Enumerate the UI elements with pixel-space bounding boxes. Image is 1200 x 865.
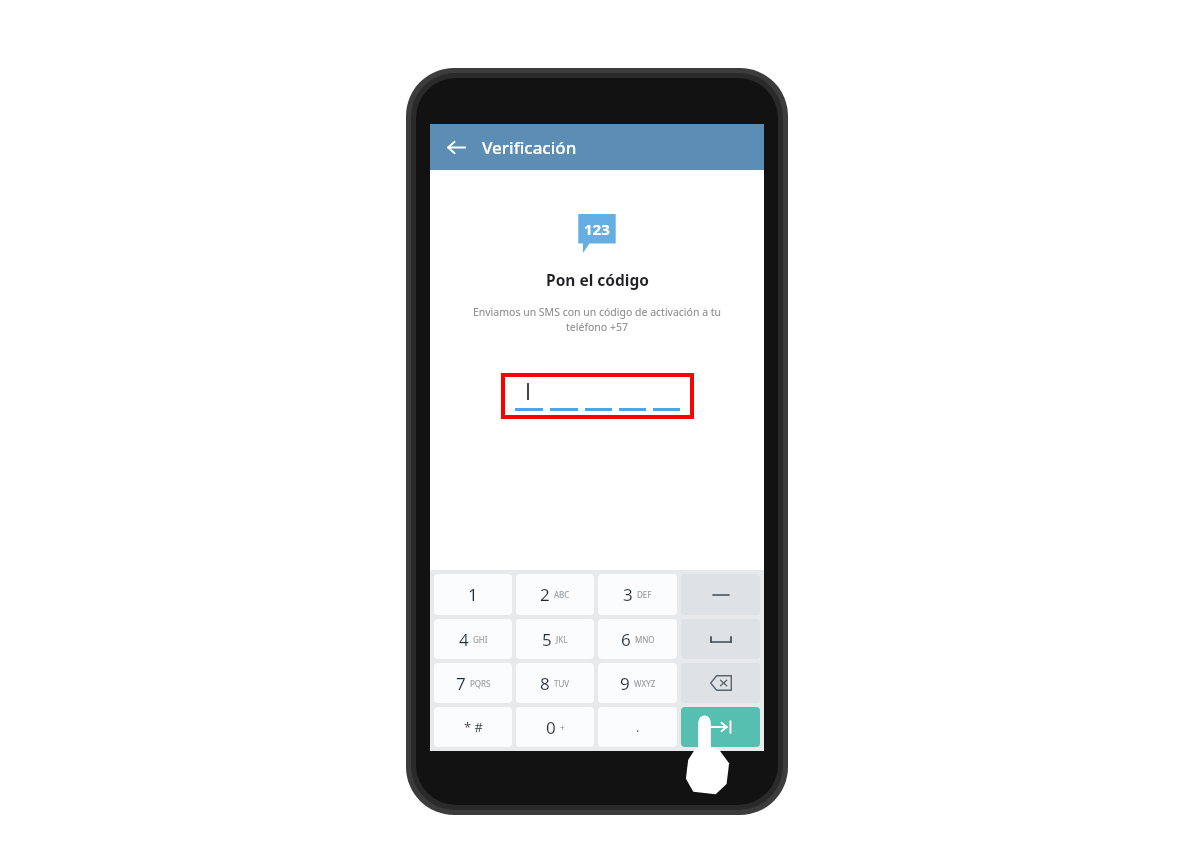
staticText: MNO	[635, 634, 655, 645]
staticText: 123	[584, 219, 610, 239]
staticText: 4	[459, 628, 469, 651]
staticText: Pon el código	[546, 269, 649, 290]
staticText: TUV	[554, 678, 570, 689]
staticText: 9	[620, 672, 630, 695]
staticText: WXYZ	[634, 678, 656, 689]
staticText: 1	[468, 583, 478, 606]
button[interactable]	[501, 373, 694, 419]
button[interactable]: 3	[598, 574, 677, 615]
staticText: .	[636, 718, 640, 736]
staticText: +	[560, 722, 565, 733]
staticText: 2	[540, 583, 550, 606]
staticText: 3	[623, 583, 633, 606]
button[interactable]: 7	[434, 663, 512, 703]
staticText: 8	[540, 672, 550, 695]
button[interactable]: 2	[516, 574, 594, 615]
staticText: DEF	[637, 589, 652, 600]
button[interactable]: 8	[516, 663, 594, 703]
button[interactable]: 6	[598, 619, 677, 659]
button[interactable]: Space	[681, 619, 760, 659]
button[interactable]: Backspace	[681, 663, 760, 703]
button[interactable]: * #	[434, 707, 512, 747]
staticText: 7	[456, 672, 466, 695]
button[interactable]: Back	[439, 130, 473, 164]
staticText: JKL	[556, 634, 568, 645]
button[interactable]: .	[598, 707, 677, 747]
button[interactable]: 5	[516, 619, 594, 659]
staticText: ABC	[554, 589, 570, 600]
staticText: Enviamos un SMS con un código de activac…	[460, 305, 734, 334]
button[interactable]: Dash	[681, 574, 760, 615]
staticText: Verificación	[482, 136, 577, 159]
staticText: * #	[464, 718, 483, 736]
button[interactable]: 1	[434, 574, 512, 615]
staticText: PQRS	[470, 678, 491, 689]
button[interactable]: 9	[598, 663, 677, 703]
button[interactable]: 0	[516, 707, 594, 747]
button[interactable]: Enter	[681, 707, 760, 747]
staticText: GHI	[473, 634, 488, 645]
button[interactable]: 4	[434, 619, 512, 659]
staticText: 5	[542, 628, 552, 651]
staticText: 0	[546, 716, 556, 739]
staticText: 6	[621, 628, 631, 651]
